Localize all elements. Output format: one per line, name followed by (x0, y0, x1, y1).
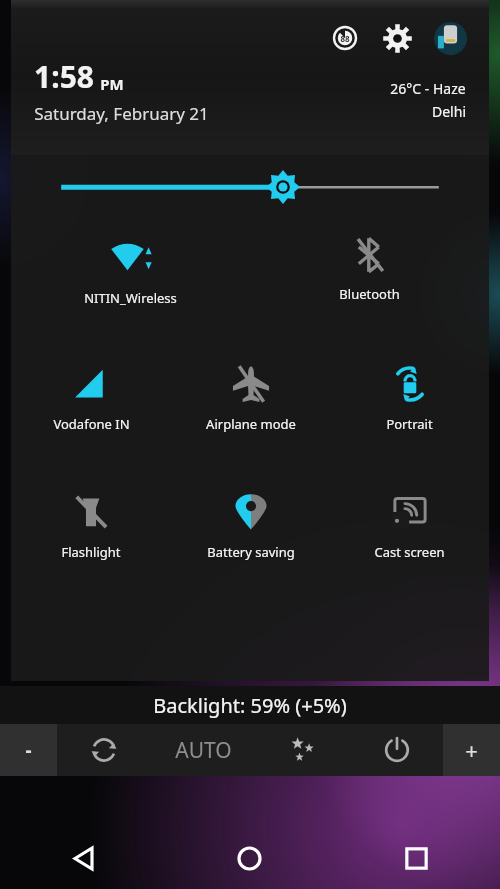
staticText: Delhi (432, 102, 466, 121)
staticText: Portrait (386, 415, 433, 433)
staticText: PM (100, 74, 124, 94)
button[interactable]: Cast screen (330, 481, 489, 567)
button[interactable]: Battery saving (171, 481, 330, 567)
button[interactable]: NITIN_Wireless (11, 225, 250, 313)
staticText: 26°C - Haze (390, 79, 466, 98)
staticText: 1:58 (34, 56, 94, 97)
button[interactable]: Vodafone IN (11, 353, 171, 439)
button[interactable]: Home (166, 827, 333, 889)
button[interactable]: AUTO (150, 724, 257, 776)
staticText: - (25, 737, 32, 763)
staticText: Saturday, February 21 (34, 102, 209, 125)
button[interactable]: Toggle (57, 724, 150, 776)
button[interactable]: Portrait (330, 353, 489, 439)
staticText: Flashlight (61, 543, 121, 561)
staticText: Backlight: 59% (+5%) (153, 692, 347, 719)
button[interactable]: Back (0, 827, 166, 889)
button[interactable]: Decrease backlight (0, 724, 57, 776)
staticText: NITIN_Wireless (84, 289, 177, 307)
button[interactable]: Bluetooth (250, 225, 489, 309)
button[interactable]: Recent apps (333, 827, 500, 889)
staticText: Cast screen (374, 543, 445, 561)
staticText: Battery saving (207, 543, 295, 561)
button[interactable]: Increase backlight (443, 724, 500, 776)
button[interactable]: Settings (379, 20, 415, 56)
staticText: Airplane mode (206, 415, 296, 433)
staticText: 88 (340, 33, 350, 44)
staticText: Bluetooth (339, 285, 400, 303)
button[interactable]: User profile (434, 22, 467, 55)
staticText: AUTO (175, 736, 232, 765)
button[interactable]: Airplane mode (171, 353, 330, 439)
button[interactable]: Battery 88 percent (330, 23, 360, 53)
staticText: Vodafone IN (53, 415, 130, 433)
button[interactable]: Night mode (257, 724, 350, 776)
button[interactable]: Flashlight (11, 481, 171, 567)
button[interactable]: Power (350, 724, 443, 776)
staticText: + (465, 735, 478, 765)
